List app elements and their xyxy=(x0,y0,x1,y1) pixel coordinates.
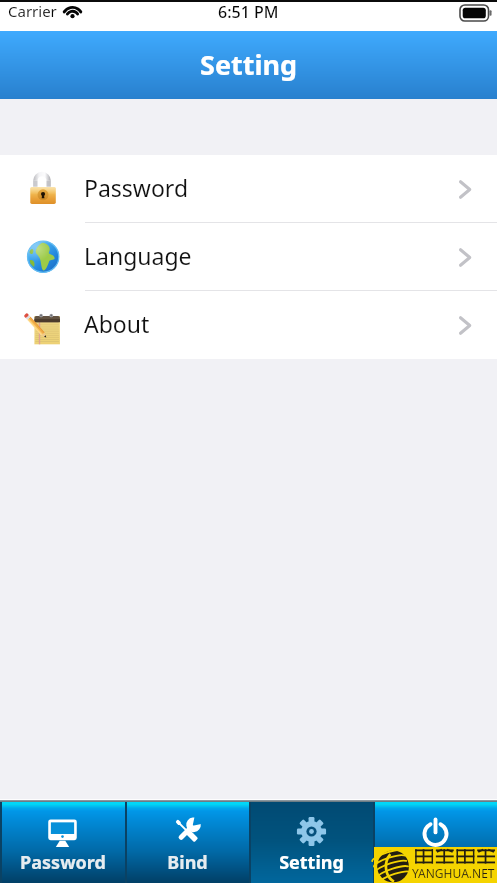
staticText: Carrier xyxy=(8,1,57,21)
staticText: Password xyxy=(20,850,106,875)
button[interactable]: Password xyxy=(0,155,497,223)
button[interactable]: Language xyxy=(0,223,497,291)
staticText: Language xyxy=(84,240,192,271)
staticText: 6:51 PM xyxy=(218,1,279,23)
button[interactable]: About xyxy=(0,291,497,359)
staticText: Bind xyxy=(167,850,208,875)
staticText: Setting xyxy=(279,850,344,875)
staticText: Setting xyxy=(200,46,298,83)
staticText: YANGHUA.NET xyxy=(412,865,495,881)
staticText: Power xyxy=(407,850,464,875)
button[interactable]: Password xyxy=(0,802,125,883)
staticText: Password xyxy=(84,172,189,203)
button[interactable]: Power xyxy=(373,802,497,883)
button[interactable]: Bind xyxy=(125,802,249,883)
button[interactable]: Setting xyxy=(249,802,373,883)
staticText: About xyxy=(84,308,150,339)
